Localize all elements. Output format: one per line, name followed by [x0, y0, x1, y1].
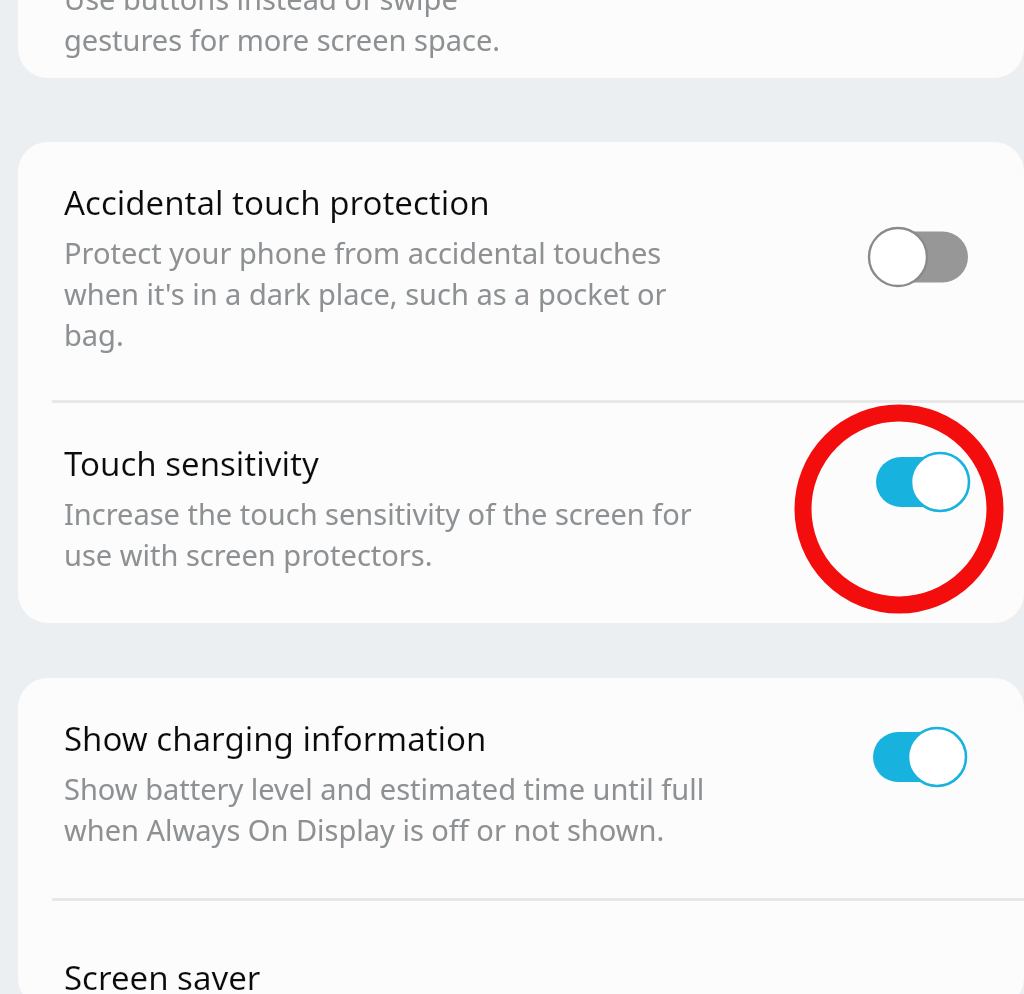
- button[interactable]: Screen saver: [18, 901, 1024, 994]
- staticText: Show battery level and estimated time un…: [64, 768, 705, 850]
- staticText: Increase the touch sensitivity of the sc…: [64, 493, 692, 575]
- button[interactable]: Accidental touch protection toggle, off: [870, 226, 970, 288]
- button[interactable]: Touch sensitivity: [18, 403, 1024, 623]
- button[interactable]: Touch sensitivity toggle, on: [875, 451, 975, 513]
- button[interactable]: Accidental touch protection: [18, 142, 1024, 400]
- button[interactable]: Show charging information: [18, 678, 1024, 898]
- staticText: Screen saver: [64, 959, 261, 994]
- button[interactable]: Show charging information toggle, on: [872, 726, 972, 788]
- staticText: Use buttons instead of swipe gestures fo…: [64, 0, 501, 60]
- staticText: Accidental touch protection: [64, 184, 490, 224]
- staticText: Show charging information: [64, 720, 487, 760]
- staticText: Protect your phone from accidental touch…: [64, 232, 667, 355]
- staticText: Touch sensitivity: [64, 445, 319, 485]
- button[interactable]: Use buttons instead of swipe gestures fo…: [18, 0, 1024, 78]
